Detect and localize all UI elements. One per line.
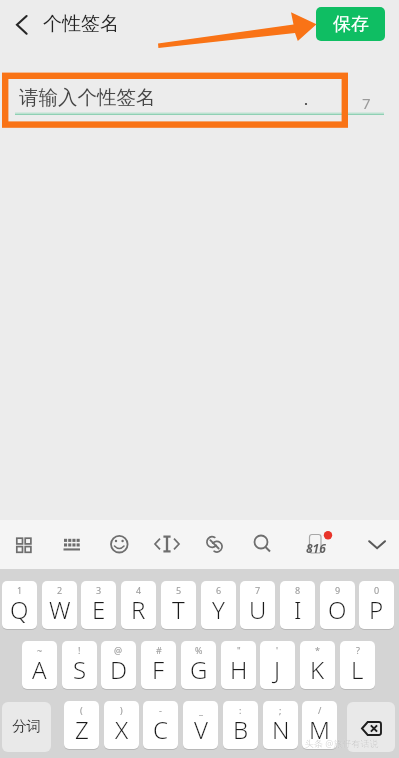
button[interactable]: " <box>221 641 256 689</box>
staticText: 个性签名 <box>43 12 119 36</box>
staticText: N <box>272 713 290 746</box>
button[interactable]: ' <box>260 641 295 689</box>
button[interactable]: 7 <box>240 581 275 629</box>
staticText: ; <box>279 704 282 716</box>
staticText: C <box>153 713 168 746</box>
staticText: @ <box>114 644 123 656</box>
staticText: S <box>73 653 87 686</box>
button[interactable]: ) <box>104 701 139 749</box>
button[interactable]: @ <box>101 641 136 689</box>
staticText: K <box>310 653 325 686</box>
staticText: 816 <box>306 540 326 556</box>
button[interactable]: 保存 <box>316 7 385 41</box>
staticText: : <box>239 704 242 716</box>
button[interactable]: Back <box>3 7 39 43</box>
staticText: 分词 <box>12 717 41 735</box>
staticText: 4 <box>136 584 142 596</box>
staticText: E <box>92 593 106 626</box>
button[interactable]: * <box>300 641 335 689</box>
staticText: X <box>115 713 129 746</box>
button[interactable]: ? <box>340 641 375 689</box>
staticText: Y <box>212 593 225 626</box>
staticText: F <box>152 653 165 686</box>
button[interactable]: 5 <box>161 581 196 629</box>
staticText: H <box>230 653 248 686</box>
staticText: 头条 @旅仔有话说 <box>305 737 379 749</box>
staticText: 0 <box>374 584 380 596</box>
staticText: 8 <box>295 584 301 596</box>
button[interactable]: 8 <box>280 581 315 629</box>
button[interactable]: ; <box>263 701 298 749</box>
button[interactable]: 6 <box>201 581 236 629</box>
button[interactable]: 4 <box>121 581 156 629</box>
staticText: ( <box>80 704 83 716</box>
button[interactable]: % <box>181 641 216 689</box>
staticText: V <box>194 713 208 746</box>
staticText: " <box>237 644 241 656</box>
staticText: % <box>195 644 203 656</box>
staticText: 头条 @旅仔有话说 <box>305 737 379 749</box>
staticText: ) <box>120 704 123 716</box>
staticText: 3 <box>96 584 102 596</box>
button[interactable]: # <box>141 641 176 689</box>
staticText: 2 <box>57 584 63 596</box>
button[interactable]: 1 <box>2 581 37 629</box>
staticText: A <box>32 653 47 686</box>
button[interactable]: / <box>302 701 337 749</box>
staticText: ~ <box>37 644 43 656</box>
staticText: / <box>318 704 322 716</box>
staticText: W <box>49 593 71 626</box>
button[interactable]: : <box>223 701 258 749</box>
button[interactable]: ~ <box>22 641 57 689</box>
button[interactable]: 0 <box>359 581 394 629</box>
staticText: O <box>328 593 347 626</box>
button[interactable]: Backspace <box>347 702 395 752</box>
button[interactable]: ( <box>64 701 99 749</box>
staticText: 请输入个性签名 <box>19 85 156 110</box>
staticText: 6 <box>216 584 222 596</box>
staticText: 7 <box>255 584 261 596</box>
staticText: - <box>159 704 162 716</box>
staticText: ' <box>276 644 279 656</box>
button[interactable]: 2 <box>42 581 77 629</box>
button[interactable]: _ <box>183 701 218 749</box>
staticText: _ <box>199 704 203 716</box>
staticText: B <box>233 713 249 746</box>
button[interactable]: 3 <box>81 581 116 629</box>
staticText: 5 <box>176 584 182 596</box>
staticText: L <box>351 653 364 686</box>
staticText: # <box>156 644 162 656</box>
button[interactable]: - <box>143 701 178 749</box>
staticText: 9 <box>335 584 341 596</box>
staticText: G <box>190 653 208 686</box>
button[interactable]: 分词 <box>2 702 51 752</box>
staticText: ? <box>356 644 360 656</box>
staticText: 7 <box>362 93 371 113</box>
staticText: D <box>110 653 128 686</box>
button[interactable]: 9 <box>320 581 355 629</box>
staticText: M <box>309 713 330 746</box>
button[interactable]: ! <box>62 641 97 689</box>
staticText: 1 <box>17 584 23 596</box>
staticText: P <box>369 593 384 626</box>
staticText: Z <box>75 713 89 746</box>
staticText: J <box>274 653 281 686</box>
staticText: Q <box>10 593 29 626</box>
staticText: 保存 <box>333 13 369 36</box>
staticText: T <box>172 593 185 626</box>
staticText: I <box>294 593 302 626</box>
staticText: ! <box>78 644 81 656</box>
staticText: R <box>131 593 146 626</box>
staticText: * <box>315 644 320 656</box>
staticText: U <box>249 593 267 626</box>
